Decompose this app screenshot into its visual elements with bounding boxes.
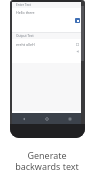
button[interactable]: Hello there: [12, 8, 81, 32]
staticText: Enter Text: [16, 3, 31, 7]
staticText: Generate backwards text: [15, 149, 79, 172]
button[interactable]: Recents: [58, 113, 81, 124]
staticText: ereht olleH: [16, 42, 35, 47]
button[interactable]: Reverse text: [75, 18, 80, 23]
button[interactable]: Copy: [75, 42, 80, 47]
staticText: Output Text: [16, 34, 34, 38]
button[interactable]: ereht olleH: [12, 39, 81, 63]
button[interactable]: Back: [12, 113, 35, 124]
staticText: Hello there: [16, 10, 35, 15]
button[interactable]: Share: [75, 49, 80, 54]
button[interactable]: Home: [35, 113, 58, 124]
